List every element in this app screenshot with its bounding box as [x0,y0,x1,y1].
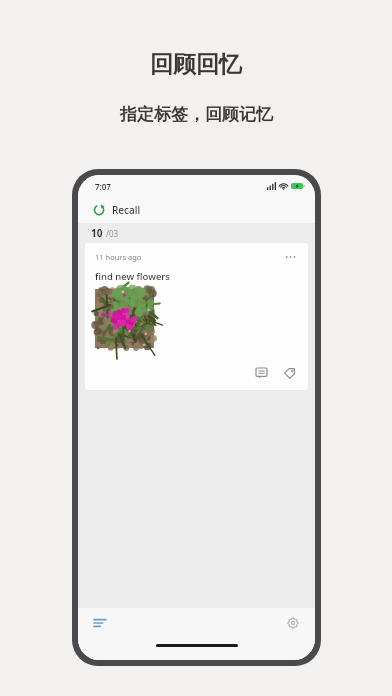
other: Recall refresh [93,204,105,216]
button[interactable]: 11 hours ago [85,243,308,390]
staticText: 7:07 [95,181,111,192]
button[interactable]: List [88,611,112,635]
staticText: Recall [112,203,141,217]
staticText: 指定标签，回顾记忆 [120,104,273,125]
button[interactable]: Settings [281,611,305,635]
button[interactable]: More options [282,251,298,263]
staticText: 回顾回忆 [150,50,242,79]
staticText: 11 hours ago [95,252,142,262]
staticText: find new flowers [95,270,170,283]
button[interactable]: Recall refresh [78,197,315,223]
staticText: 10 [91,226,103,240]
staticText: /03 [106,228,119,239]
button[interactable]: Comment [252,364,270,382]
button[interactable]: Tag [280,364,298,382]
